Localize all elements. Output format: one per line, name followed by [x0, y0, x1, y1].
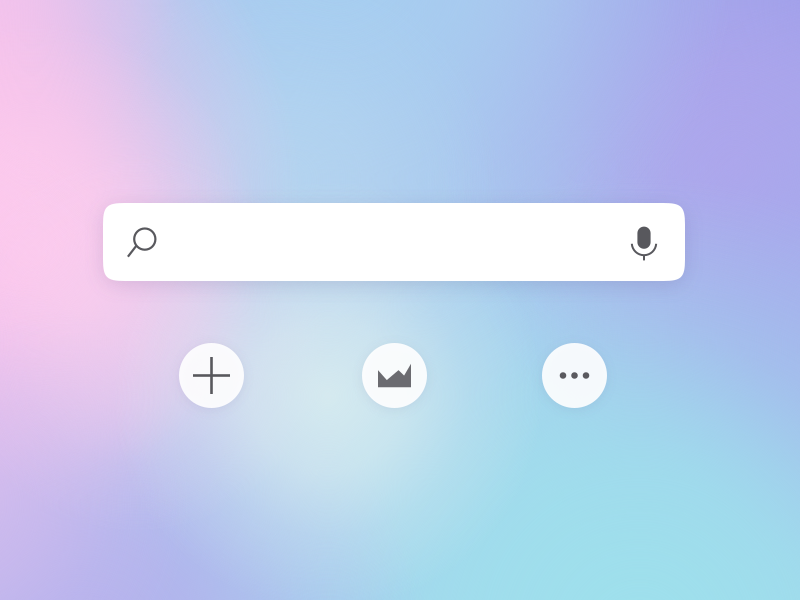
button[interactable]: More [542, 343, 607, 408]
button[interactable]: New [179, 343, 244, 408]
button[interactable]: Photos [362, 343, 427, 408]
button[interactable]: Search [103, 203, 685, 281]
